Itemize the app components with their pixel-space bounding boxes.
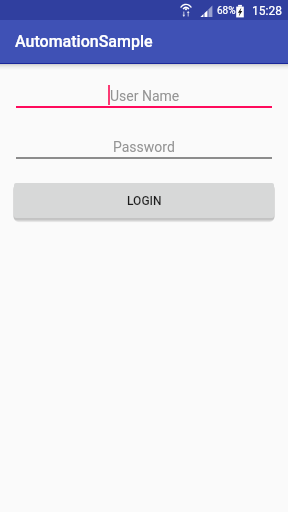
button[interactable]: User Name — [16, 85, 272, 108]
button[interactable]: Password — [16, 136, 272, 159]
other: Wi-Fi connected — [180, 2, 192, 19]
staticText: AutomationSample — [15, 32, 153, 51]
staticText: 68% — [217, 5, 236, 17]
other: Mobile signal strength — [200, 4, 213, 18]
staticText: 15:28 — [252, 4, 282, 18]
staticText: LOGIN — [127, 194, 162, 208]
other: Battery charging, 68 percent — [236, 4, 244, 18]
staticText: User Name — [110, 88, 180, 104]
staticText: Password — [113, 139, 175, 155]
button[interactable]: LOGIN — [14, 183, 274, 218]
